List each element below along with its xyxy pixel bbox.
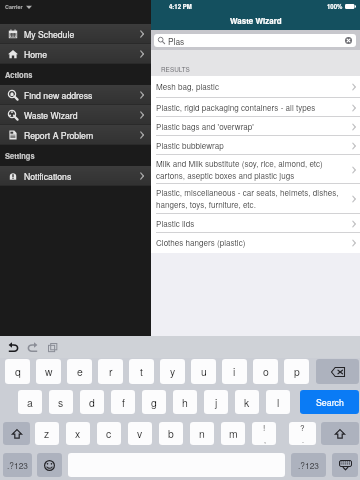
staticText: 4:12 PM [169,2,192,11]
button[interactable]: v [128,422,152,445]
button[interactable]: q [5,359,30,384]
button[interactable]: Notifications [0,166,151,186]
staticText: Carrier [5,3,23,11]
button[interactable]: Emoji [37,453,62,477]
button[interactable]: s [49,390,73,414]
staticText: e [77,364,83,379]
staticText: k [244,395,250,410]
button[interactable]: Undo [5,340,20,355]
staticText: Find new address [24,89,93,101]
button[interactable]: Report A Problem [0,125,151,145]
button[interactable]: k [235,390,259,414]
button[interactable]: Plastic bubblewrap [151,136,360,155]
button[interactable]: Plastic, miscellaneous - car seats, helm… [151,184,360,214]
button[interactable]: Hide keyboard [332,453,358,477]
staticText: .?123 [7,459,28,471]
button[interactable]: o [253,359,278,384]
button[interactable]: Clothes hangers (plastic) [151,233,360,253]
button[interactable]: g [142,390,166,414]
button[interactable]: Shift [321,422,359,445]
button[interactable]: t [129,359,154,384]
button[interactable]: e [67,359,92,384]
button[interactable]: .?123 [291,453,326,477]
staticText: b [168,426,174,441]
button[interactable]: d [80,390,104,414]
staticText: Home [24,48,48,60]
button[interactable]: Home [0,44,151,64]
button[interactable]: b [159,422,183,445]
button[interactable]: Shift [3,422,30,445]
staticText: Report A Problem [24,129,94,141]
staticText: o [263,364,269,379]
staticText: 100% [327,2,343,11]
button[interactable]: Milk and Milk substitute (soy, rice, alm… [151,155,360,184]
staticText: l [277,395,280,410]
button[interactable]: w [36,359,61,384]
staticText: My Schedule [24,28,75,40]
button[interactable]: f [111,390,135,414]
button[interactable]: u [191,359,216,384]
staticText: s [58,395,64,410]
staticText: j [215,395,218,410]
button[interactable]: Paste [45,340,60,355]
staticText: t [140,364,143,379]
staticText: g [151,395,157,410]
button[interactable]: y [160,359,185,384]
staticText: Plas [168,35,185,47]
staticText: x [75,426,81,441]
button[interactable]: Search [300,390,359,414]
button[interactable]: Plastic bags and 'overwrap' [151,117,360,136]
button[interactable]: z [35,422,59,445]
staticText: Search [316,396,344,409]
staticText: m [229,426,238,441]
staticText: ! [263,422,266,434]
staticText: u [201,364,207,379]
button[interactable]: p [284,359,309,384]
button[interactable]: Redo [25,340,40,355]
staticText: n [199,426,205,441]
button[interactable]: m [221,422,245,445]
staticText: r [109,364,113,379]
button[interactable]: Plastic lids [151,214,360,233]
staticText: i [233,364,236,379]
button[interactable]: ! [252,422,276,445]
staticText: h [182,395,188,410]
staticText: hangers, toys, furniture, etc. [156,199,256,211]
staticText: Plastic, rigid packaging containers - al… [156,102,316,114]
button[interactable]: Plas [154,34,356,47]
button[interactable]: My Schedule [0,24,151,44]
button[interactable]: Find new address [0,85,151,105]
button[interactable]: i [222,359,247,384]
button[interactable]: a [18,390,42,414]
staticText: Plastic, miscellaneous - car seats, helm… [156,187,339,199]
staticText: RESULTS [161,65,190,74]
button[interactable]: n [190,422,214,445]
staticText: p [294,364,300,379]
staticText: , [264,435,266,445]
staticText: Plastic lids [156,218,195,230]
button[interactable]: Waste Wizard [0,105,151,125]
button[interactable]: h [173,390,197,414]
button[interactable]: .?123 [3,453,32,477]
button[interactable]: j [204,390,228,414]
button[interactable]: Mesh bag, plastic [151,76,360,98]
staticText: Waste Wizard [24,109,78,121]
staticText: Plastic bubblewrap [156,140,224,152]
button[interactable]: r [98,359,123,384]
staticText: a [27,395,33,410]
staticText: f [122,395,125,410]
staticText: Milk and Milk substitute (soy, rice, alm… [156,158,323,170]
staticText: c [106,426,112,441]
button[interactable]: ? [289,422,316,445]
button[interactable]: l [266,390,290,414]
button[interactable]: c [97,422,121,445]
staticText: .?123 [298,459,319,471]
button[interactable]: Plastic, rigid packaging containers - al… [151,98,360,117]
staticText: cartons, aseptic boxes and plastic jugs [156,170,295,182]
staticText: Notifications [24,170,72,182]
staticText: Mesh bag, plastic [156,81,219,93]
button[interactable]: Backspace [316,359,359,384]
button[interactable]: x [66,422,90,445]
staticText: . [302,435,304,445]
